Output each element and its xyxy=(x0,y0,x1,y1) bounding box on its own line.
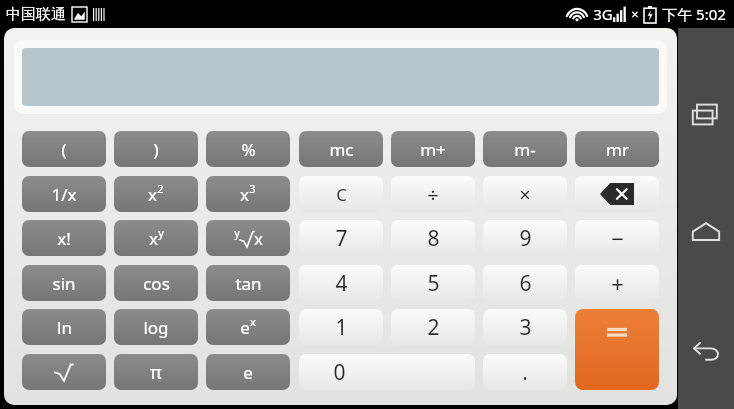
staticText: m+ xyxy=(420,138,446,161)
staticText: x xyxy=(149,227,158,250)
staticText: m- xyxy=(514,138,536,161)
button[interactable]: C xyxy=(299,176,383,212)
staticText: cos xyxy=(143,272,170,295)
button[interactable] xyxy=(575,309,659,390)
button[interactable]: − xyxy=(575,220,659,256)
button[interactable]: 9 xyxy=(483,220,567,256)
staticText: 8 xyxy=(427,224,440,253)
button[interactable]: Back xyxy=(680,326,732,378)
staticText: 2 xyxy=(427,313,440,342)
button[interactable]: . xyxy=(483,354,567,390)
button[interactable]: 4 xyxy=(299,265,383,301)
staticText: log xyxy=(143,316,169,339)
staticText: x xyxy=(250,314,256,329)
button[interactable]: m+ xyxy=(391,131,475,167)
staticText: tan xyxy=(235,272,262,295)
button[interactable]: x xyxy=(114,220,198,256)
staticText: 3 xyxy=(249,181,256,196)
button[interactable]: 1 xyxy=(299,309,383,345)
button[interactable]: log xyxy=(114,309,198,345)
button[interactable]: 7 xyxy=(299,220,383,256)
button[interactable]: x xyxy=(114,176,198,212)
button[interactable]: 8 xyxy=(391,220,475,256)
staticText: 0 xyxy=(333,358,346,387)
staticText: ) xyxy=(153,138,159,161)
staticText: 2 xyxy=(157,181,164,196)
button[interactable]: π xyxy=(114,354,198,390)
button[interactable]: Home xyxy=(680,208,732,260)
button[interactable]: e xyxy=(206,354,290,390)
button[interactable]: mr xyxy=(575,131,659,167)
staticText: . xyxy=(522,358,528,387)
staticText: e xyxy=(240,316,250,339)
staticText: C xyxy=(336,183,347,206)
button[interactable]: ÷ xyxy=(391,176,475,212)
staticText: × xyxy=(519,181,531,208)
staticText: mc xyxy=(329,138,354,161)
button[interactable]: 3 xyxy=(483,309,567,345)
button[interactable]: 5 xyxy=(391,265,475,301)
button[interactable]: x xyxy=(206,176,290,212)
button[interactable]: mc xyxy=(299,131,383,167)
button[interactable]: Square root xyxy=(22,354,106,390)
staticText: 中国联通 xyxy=(6,5,66,24)
staticText: × xyxy=(631,5,639,23)
button[interactable]: Recents xyxy=(680,90,732,142)
staticText: 3 xyxy=(519,313,532,342)
button[interactable]: 1/x xyxy=(22,176,106,212)
staticText: ( xyxy=(61,138,67,161)
staticText: % xyxy=(241,138,256,161)
staticText: y xyxy=(234,226,240,240)
button[interactable]: cos xyxy=(114,265,198,301)
staticText: π xyxy=(150,360,162,385)
staticText: 3G xyxy=(593,4,613,24)
staticText: ln xyxy=(57,316,72,339)
staticText: 1 xyxy=(335,313,348,342)
staticText: y xyxy=(158,225,164,240)
staticText: x xyxy=(148,183,157,206)
button[interactable]: e xyxy=(206,309,290,345)
staticText: + xyxy=(611,268,624,298)
staticText: x xyxy=(254,227,263,250)
staticText: 下午 5:02 xyxy=(662,4,726,24)
button[interactable]: ln xyxy=(22,309,106,345)
staticText: e xyxy=(243,361,253,384)
button[interactable]: 2 xyxy=(391,309,475,345)
staticText: ÷ xyxy=(427,181,439,208)
staticText: 6 xyxy=(519,269,532,298)
staticText: sin xyxy=(52,272,76,295)
button[interactable]: Backspace xyxy=(575,176,659,212)
button[interactable]: ) xyxy=(114,131,198,167)
staticText: x xyxy=(240,183,249,206)
staticText: mr xyxy=(606,138,629,161)
staticText: 1/x xyxy=(51,183,77,206)
button[interactable]: y xyxy=(206,220,290,256)
staticText: 4 xyxy=(335,269,348,298)
button[interactable]: × xyxy=(483,176,567,212)
staticText: 5 xyxy=(427,269,440,298)
button[interactable]: tan xyxy=(206,265,290,301)
button[interactable]: + xyxy=(575,265,659,301)
button[interactable]: % xyxy=(206,131,290,167)
button[interactable]: sin xyxy=(22,265,106,301)
button[interactable]: ( xyxy=(22,131,106,167)
staticText: 7 xyxy=(335,224,348,253)
button[interactable]: 6 xyxy=(483,265,567,301)
staticText: − xyxy=(611,223,624,253)
button[interactable]: x! xyxy=(22,220,106,256)
button[interactable]: 0 xyxy=(299,354,475,390)
staticText: 9 xyxy=(519,224,532,253)
staticText: x! xyxy=(57,227,71,250)
button[interactable]: m- xyxy=(483,131,567,167)
